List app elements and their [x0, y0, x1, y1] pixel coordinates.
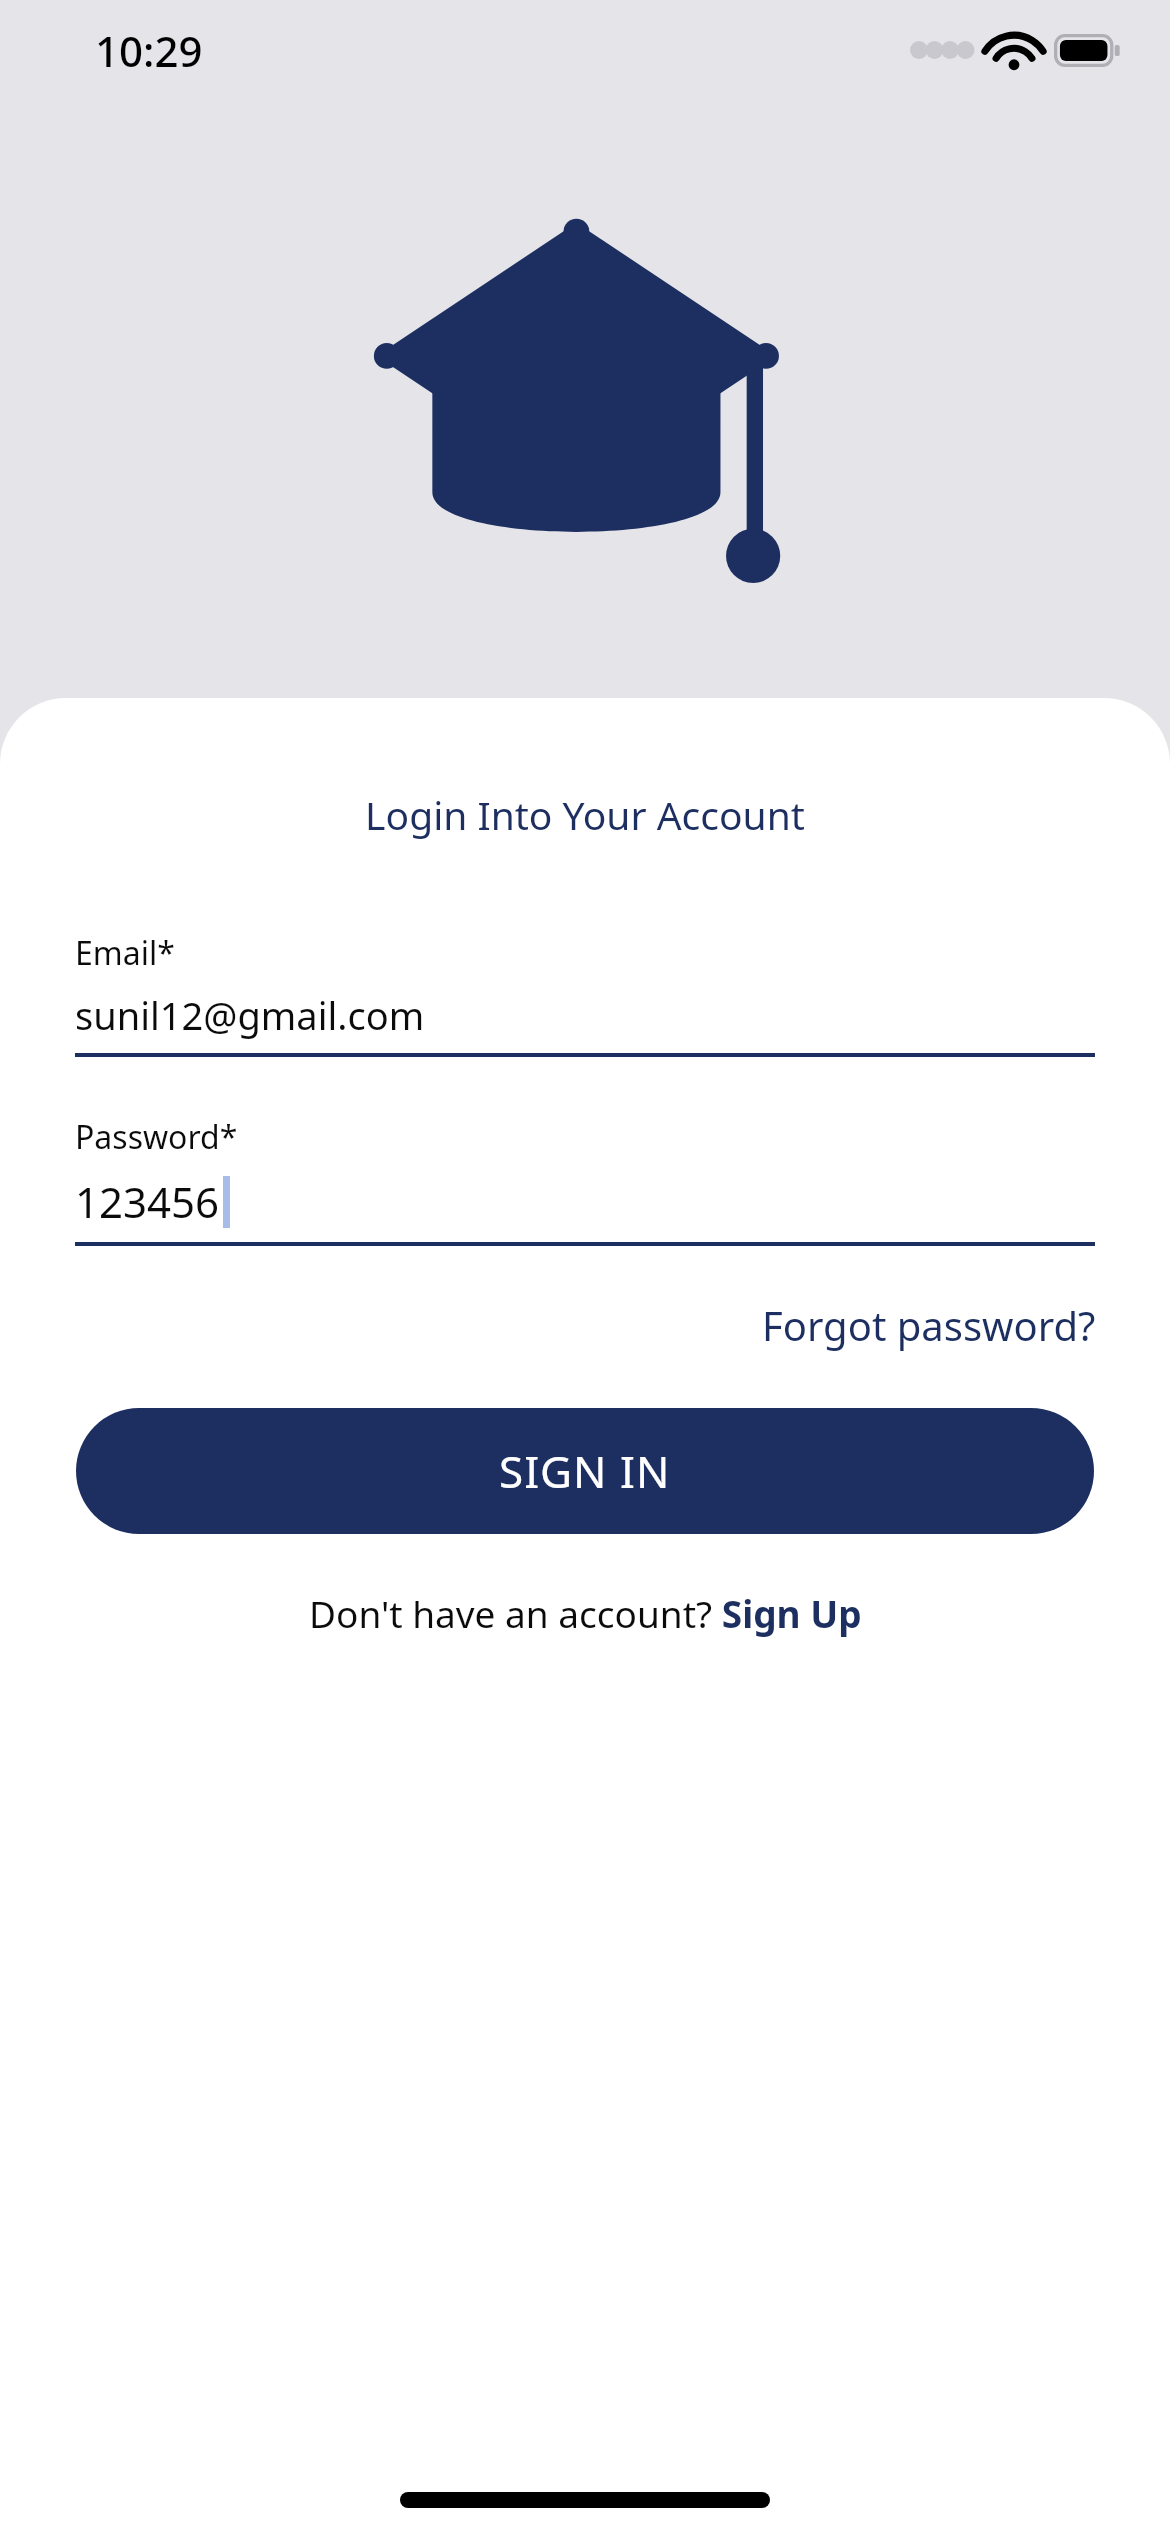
staticText: sunil12@gmail.com	[75, 989, 425, 1041]
staticText: SIGN IN	[499, 1441, 671, 1501]
staticText: Password*	[75, 1115, 238, 1159]
staticText: Forgot password?	[762, 1298, 1096, 1352]
button[interactable]: Forgot password?	[762, 1292, 1096, 1358]
button[interactable]: Email*	[75, 931, 1095, 1057]
other: Graduation cap logo	[370, 218, 800, 528]
button[interactable]: Password*	[75, 1115, 1095, 1246]
staticText: Don't have an account? Sign Up	[309, 1588, 862, 1638]
button[interactable]: Don't have an account? Sign Up	[301, 1582, 870, 1644]
staticText: Login Into Your Account	[0, 788, 1170, 841]
button[interactable]: SIGN IN	[76, 1408, 1094, 1534]
staticText: Email*	[75, 931, 175, 975]
staticText: 10:29	[95, 22, 203, 79]
staticText: 123456	[75, 1173, 220, 1230]
